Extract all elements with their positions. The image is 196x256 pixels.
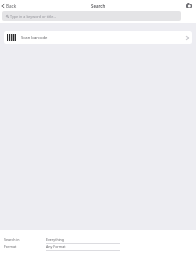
button[interactable]: Back [0,2,21,10]
staticText: Any Format [46,244,66,249]
button[interactable]: Format [0,243,196,253]
staticText: Back [6,3,17,9]
button[interactable]: Scan barcode [4,31,192,44]
button[interactable]: Search in [0,236,196,246]
staticText: Type in a keyword or title... [10,14,57,19]
staticText: Search [91,3,106,9]
staticText: Everything [46,237,65,242]
button[interactable]: Search by camera [184,1,193,10]
staticText: Scan barcode [21,35,48,41]
button[interactable]: Type in a keyword or title... [2,11,181,21]
staticText: Search in [4,237,20,242]
staticText: Format [4,244,17,249]
